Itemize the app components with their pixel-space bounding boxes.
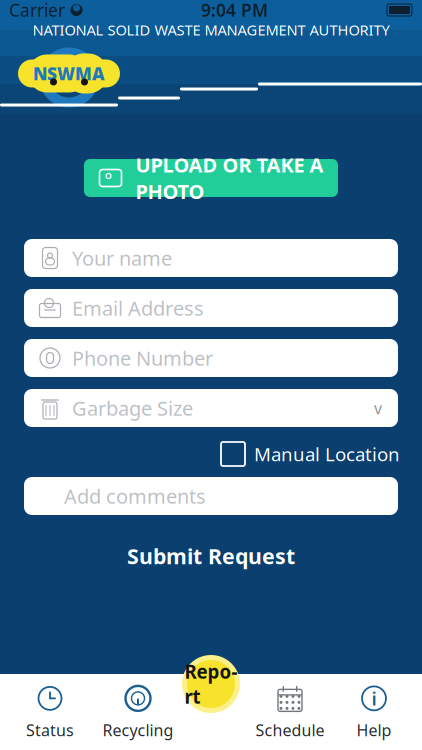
staticText: Phone Number xyxy=(72,345,213,371)
button[interactable]: UPLOAD OR TAKE A PHOTO xyxy=(84,159,338,197)
staticText: Report xyxy=(184,659,237,709)
staticText: Garbage Size xyxy=(72,395,193,421)
staticText: Your name xyxy=(72,245,172,271)
button[interactable]: Garbage Size xyxy=(24,389,398,427)
staticText: v xyxy=(374,397,382,419)
staticText: 9:04 PM xyxy=(201,0,268,21)
button[interactable]: Submit Request xyxy=(111,539,311,573)
button[interactable]: Phone Number xyxy=(24,339,398,377)
button[interactable]: Your name xyxy=(24,239,398,277)
staticText: Schedule xyxy=(255,719,324,741)
staticText: Status xyxy=(26,719,74,741)
staticText: Manual Location xyxy=(254,442,400,466)
button[interactable]: i xyxy=(334,680,414,744)
staticText: NSWMA xyxy=(33,62,105,85)
button[interactable]: Manual Location xyxy=(22,438,400,470)
button[interactable]: Recycling xyxy=(92,680,184,744)
button[interactable]: Schedule xyxy=(246,680,334,744)
button[interactable]: Report xyxy=(181,654,241,714)
staticText: Carrier xyxy=(9,0,65,21)
staticText: Help xyxy=(356,719,391,741)
staticText: Submit Request xyxy=(127,542,295,570)
staticText: NATIONAL SOLID WASTE MANAGEMENT AUTHORIT… xyxy=(32,20,389,39)
button[interactable]: Add comments xyxy=(24,477,398,515)
button[interactable]: Email Address xyxy=(24,289,398,327)
staticText: i xyxy=(371,686,376,711)
staticText: Add comments xyxy=(64,483,206,509)
staticText: Email Address xyxy=(72,295,204,321)
button[interactable]: Status xyxy=(8,680,92,744)
staticText: UPLOAD OR TAKE A PHOTO xyxy=(135,151,323,204)
staticText: Recycling xyxy=(102,719,173,741)
